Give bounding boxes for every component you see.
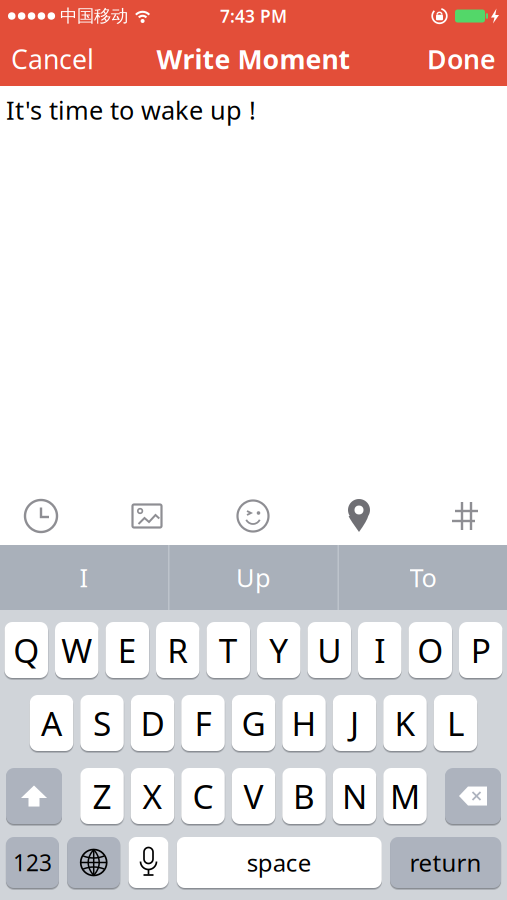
button[interactable]: Done [427,41,507,77]
button[interactable]: Photo [130,499,164,533]
staticText: O [417,628,443,672]
staticText: T [219,628,238,672]
staticText: 123 [13,847,52,877]
staticText: N [342,774,367,818]
button[interactable]: space [177,837,382,888]
staticText: G [241,701,265,745]
staticText: Z [92,774,111,818]
staticText: V [243,774,263,818]
staticText: Up [236,561,271,594]
staticText: Y [269,628,288,672]
button[interactable]: Cancel [0,41,94,77]
button[interactable]: R [156,622,199,678]
button[interactable]: V [232,768,275,824]
staticText: R [167,628,188,672]
button[interactable]: Delete [445,768,501,824]
button[interactable]: Location [342,499,376,533]
staticText: J [350,701,359,745]
button[interactable]: I [0,561,168,594]
staticText: Done [427,41,496,77]
button[interactable]: Next keyboard [67,837,120,888]
staticText: B [293,774,315,818]
staticText: 7:43 PM [220,4,287,27]
button[interactable]: K [383,695,427,751]
staticText: K [394,701,415,745]
staticText: U [317,628,341,672]
button[interactable]: I [358,622,401,678]
button[interactable]: O [408,622,452,678]
staticText: return [410,847,482,878]
staticText: F [194,701,211,745]
button[interactable]: C [181,768,225,824]
button[interactable]: Z [80,768,124,824]
button[interactable]: M [383,768,427,824]
button[interactable]: return [390,837,501,888]
button[interactable]: G [232,695,275,751]
button[interactable]: L [434,695,477,751]
button[interactable]: Q [4,622,48,678]
button[interactable]: N [333,768,376,824]
staticText: space [247,847,312,878]
button[interactable]: A [30,695,73,751]
button[interactable]: J [333,695,376,751]
staticText: C [192,774,213,818]
staticText: D [140,701,164,745]
staticText: I [79,561,88,594]
staticText: To [409,561,436,594]
button[interactable]: Up [169,561,337,594]
staticText: I [374,628,385,672]
button[interactable]: B [282,768,326,824]
button[interactable]: W [55,622,98,678]
button[interactable]: To [339,561,507,594]
staticText: X [142,774,162,818]
staticText: H [291,701,316,745]
button[interactable]: Topic [448,499,482,533]
button[interactable]: H [282,695,326,751]
button[interactable]: P [459,622,502,678]
button[interactable]: Shift [6,768,62,824]
button[interactable]: F [181,695,225,751]
staticText: S [93,701,111,745]
button[interactable]: U [307,622,351,678]
button[interactable]: Dictate [128,837,168,888]
button[interactable]: D [131,695,174,751]
button[interactable]: Y [257,622,300,678]
staticText: Q [13,628,39,672]
button[interactable]: S [80,695,124,751]
staticText: A [41,701,62,745]
button[interactable]: Schedule [24,499,58,533]
staticText: L [447,701,464,745]
staticText: It's time to wake up ! [6,93,256,127]
staticText: M [390,774,420,818]
button[interactable]: T [206,622,250,678]
staticText: Cancel [11,41,94,77]
button[interactable]: Emoji [236,499,270,533]
button[interactable]: Numbers [6,837,59,888]
button[interactable]: E [105,622,149,678]
staticText: P [471,628,491,672]
staticText: E [118,628,137,672]
staticText: W [61,628,92,672]
staticText: Write Moment [156,41,350,77]
staticText: 中国移动 [60,5,128,27]
button[interactable]: X [131,768,174,824]
